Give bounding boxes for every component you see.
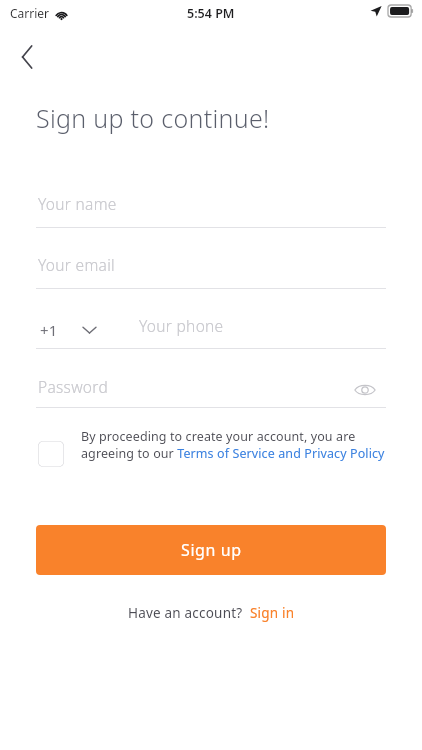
button[interactable] [36, 377, 346, 409]
staticText: Your name [38, 193, 117, 214]
staticText: Password [38, 376, 108, 397]
button[interactable]: Back [6, 36, 48, 78]
button[interactable] [36, 257, 386, 291]
button[interactable]: By proceeding to create your account, yo… [36, 427, 386, 460]
staticText: 5:54 PM [187, 5, 235, 22]
staticText: Carrier [10, 5, 50, 21]
button[interactable] [133, 318, 386, 350]
staticText: Sign in [250, 604, 295, 622]
staticText: Your email [38, 254, 115, 275]
staticText: +1 [40, 320, 58, 340]
button[interactable]: Sign in [250, 604, 295, 622]
staticText: Your phone [139, 315, 224, 336]
staticText: Sign up [181, 539, 242, 561]
button[interactable]: Show password [346, 371, 384, 409]
staticText: By proceeding to create your account, yo… [81, 428, 386, 461]
staticText: Have an account? [128, 604, 243, 622]
staticText: Sign up to continue! [36, 101, 270, 135]
button[interactable]: +1 [36, 313, 135, 347]
button[interactable] [36, 196, 386, 230]
button[interactable]: Sign up [36, 525, 386, 575]
